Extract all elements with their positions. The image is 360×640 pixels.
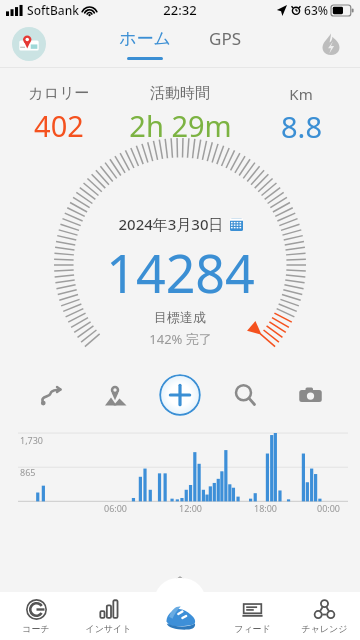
- staticText: 06:00: [78, 502, 153, 514]
- staticText: 1,730: [20, 434, 44, 446]
- button[interactable]: Km: [246, 84, 356, 146]
- staticText: 18:00: [228, 502, 303, 514]
- staticText: 目標達成: [154, 309, 206, 325]
- button[interactable]: GPS: [199, 25, 251, 63]
- button[interactable]: Streak: [316, 29, 346, 59]
- button[interactable]: 活動時間: [114, 84, 246, 145]
- staticText: 63%: [304, 2, 328, 18]
- staticText: SoftBank: [27, 2, 79, 18]
- staticText: カロリー: [28, 84, 90, 103]
- button[interactable]: Expand: [0, 572, 360, 592]
- staticText: 865: [20, 466, 36, 478]
- button[interactable]: インサイト: [72, 592, 144, 640]
- staticText: Km: [289, 84, 313, 104]
- staticText: 142% 完了: [149, 330, 212, 348]
- staticText: フィード: [234, 623, 271, 634]
- staticText: 00:00: [303, 502, 354, 514]
- staticText: インサイト: [85, 623, 132, 634]
- button[interactable]: Activity: [157, 593, 203, 639]
- button[interactable]: Add: [159, 374, 201, 416]
- staticText: 12:00: [153, 502, 228, 514]
- staticText: 活動時間: [150, 84, 210, 103]
- staticText: 402: [34, 106, 84, 145]
- staticText: 8.8: [281, 107, 322, 146]
- button[interactable]: カロリー: [4, 84, 114, 145]
- staticText: 22:32: [163, 1, 197, 19]
- staticText: 2024年3月30日: [118, 214, 224, 234]
- button[interactable]: 2024年3月30日: [116, 212, 245, 236]
- button[interactable]: Camera: [290, 375, 330, 415]
- button[interactable]: ホーム: [109, 26, 181, 62]
- button[interactable]: Map: [12, 27, 46, 61]
- button[interactable]: コーチ: [0, 592, 72, 640]
- button[interactable]: チャレンジ: [288, 592, 360, 640]
- button[interactable]: Route: [30, 375, 70, 415]
- staticText: ホーム: [119, 28, 171, 49]
- button[interactable]: フィード: [216, 592, 288, 640]
- button[interactable]: Search: [225, 375, 265, 415]
- staticText: コーチ: [22, 623, 50, 634]
- staticText: GPS: [209, 27, 241, 50]
- staticText: 2h 29m: [129, 106, 232, 145]
- staticText: チャレンジ: [301, 623, 348, 634]
- staticText: 14284: [106, 237, 255, 308]
- button[interactable]: Places: [95, 375, 135, 415]
